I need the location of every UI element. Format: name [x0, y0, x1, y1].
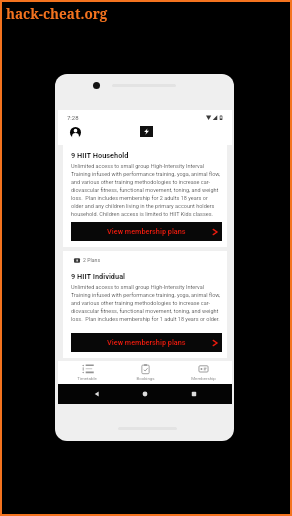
- staticText: View membership plans: [107, 227, 186, 236]
- staticText: 7:28: [67, 114, 79, 121]
- button[interactable]: View membership plans: [71, 333, 222, 352]
- staticText: Timetable: [77, 376, 97, 381]
- staticText: Unlimited access to small group High-Int…: [71, 163, 221, 217]
- button[interactable]: Bookings: [116, 361, 174, 384]
- staticText: Unlimited access to small group High-Int…: [71, 284, 221, 322]
- staticText: View membership plans: [107, 338, 186, 347]
- button[interactable]: Recent apps: [184, 384, 204, 404]
- staticText: Membership: [191, 376, 216, 381]
- button[interactable]: View membership plans: [71, 222, 222, 241]
- button[interactable]: Timetable: [58, 361, 116, 384]
- button[interactable]: Membership: [174, 361, 232, 384]
- button[interactable]: Brand logo: [140, 126, 153, 137]
- button[interactable]: Account: [67, 124, 83, 140]
- staticText: hack-cheat.org: [6, 5, 108, 23]
- button[interactable]: Back: [87, 384, 107, 404]
- staticText: 2 Plans: [83, 257, 101, 263]
- staticText: Bookings: [136, 376, 155, 381]
- staticText: 9 HIIT Individual: [71, 272, 126, 281]
- button[interactable]: Home: [135, 384, 155, 404]
- staticText: 9 HIIT Household: [71, 151, 129, 160]
